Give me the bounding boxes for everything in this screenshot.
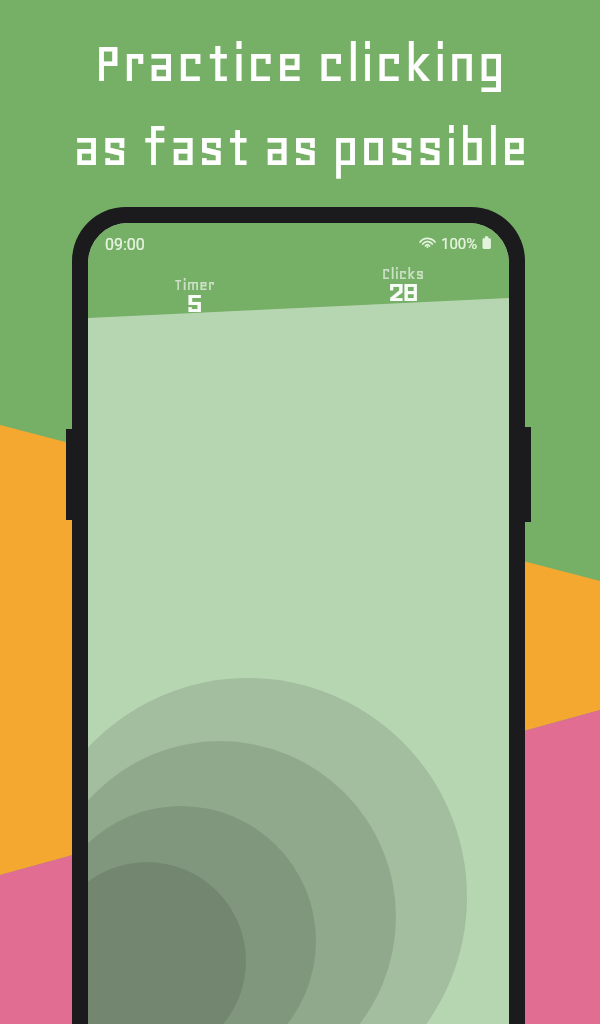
staticText: 5 (185, 281, 203, 321)
staticText: Practice clicking (94, 31, 506, 94)
staticText: 09:00 (105, 235, 145, 254)
staticText: Timer (174, 276, 215, 294)
staticText: as fast as possible (72, 117, 529, 178)
button[interactable]: Tap to click (88, 318, 509, 1024)
button[interactable]: Timer (152, 272, 237, 318)
button[interactable]: Clicks (360, 261, 445, 307)
staticText: 100% (441, 235, 478, 253)
staticText: 28 (389, 270, 418, 310)
staticText: Clicks (382, 265, 425, 283)
